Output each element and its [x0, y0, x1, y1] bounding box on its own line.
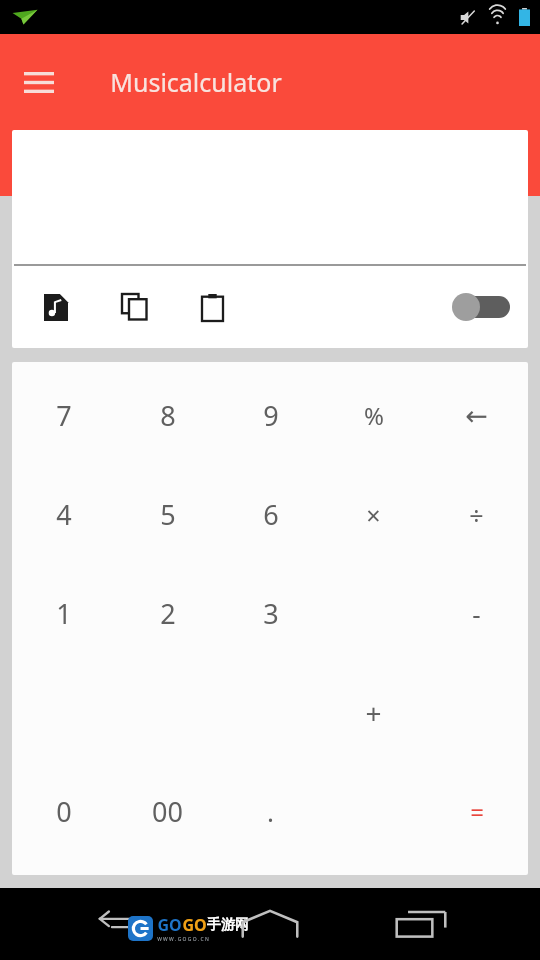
staticText: 8: [160, 397, 176, 434]
button[interactable]: +: [322, 663, 425, 762]
staticText: +: [365, 694, 382, 732]
button[interactable]: 0: [12, 762, 116, 861]
button[interactable]: ÷: [425, 465, 528, 564]
button[interactable]: 6: [219, 465, 322, 564]
button[interactable]: 2: [116, 564, 219, 663]
staticText: %: [364, 399, 384, 432]
staticText: GO: [157, 914, 182, 936]
staticText: 1: [56, 595, 72, 632]
staticText: W W W . G O G O . C N: [157, 936, 209, 943]
button[interactable]: =: [425, 762, 528, 861]
staticText: Musicalculator: [110, 65, 282, 99]
button[interactable]: .: [219, 762, 322, 861]
button[interactable]: ←: [425, 366, 528, 465]
button[interactable]: Save as music file: [34, 285, 78, 329]
button[interactable]: Copy: [112, 285, 156, 329]
staticText: 6: [263, 496, 279, 533]
button[interactable]: Recent apps: [388, 891, 454, 957]
button[interactable]: ×: [322, 465, 425, 564]
staticText: 9: [263, 397, 279, 434]
button[interactable]: 8: [116, 366, 219, 465]
button[interactable]: 1: [12, 564, 116, 663]
button[interactable]: Open navigation menu: [16, 59, 62, 105]
button[interactable]: 00: [116, 762, 219, 861]
button[interactable]: Paste: [190, 285, 234, 329]
staticText: .: [267, 794, 274, 829]
staticText: 4: [56, 496, 72, 533]
button[interactable]: 3: [219, 564, 322, 663]
button[interactable]: %: [322, 366, 425, 465]
staticText: ÷: [469, 498, 484, 532]
button[interactable]: 5: [116, 465, 219, 564]
button[interactable]: Toggle sound: [450, 287, 512, 327]
button[interactable]: Home: [237, 891, 303, 957]
staticText: -: [472, 596, 481, 631]
staticText: 手游网: [207, 916, 249, 934]
staticText: =: [470, 795, 484, 828]
button[interactable]: 7: [12, 366, 116, 465]
staticText: ←: [465, 400, 488, 431]
button[interactable]: 9: [219, 366, 322, 465]
staticText: 0: [56, 793, 72, 830]
staticText: GO: [182, 914, 207, 936]
button[interactable]: 4: [12, 465, 116, 564]
staticText: 00: [152, 793, 183, 830]
button[interactable]: Back: [82, 891, 148, 957]
staticText: 2: [160, 595, 176, 632]
staticText: ×: [366, 498, 381, 532]
button[interactable]: -: [425, 564, 528, 663]
staticText: 3: [263, 595, 279, 632]
staticText: 7: [56, 397, 72, 434]
staticText: 5: [160, 496, 176, 533]
